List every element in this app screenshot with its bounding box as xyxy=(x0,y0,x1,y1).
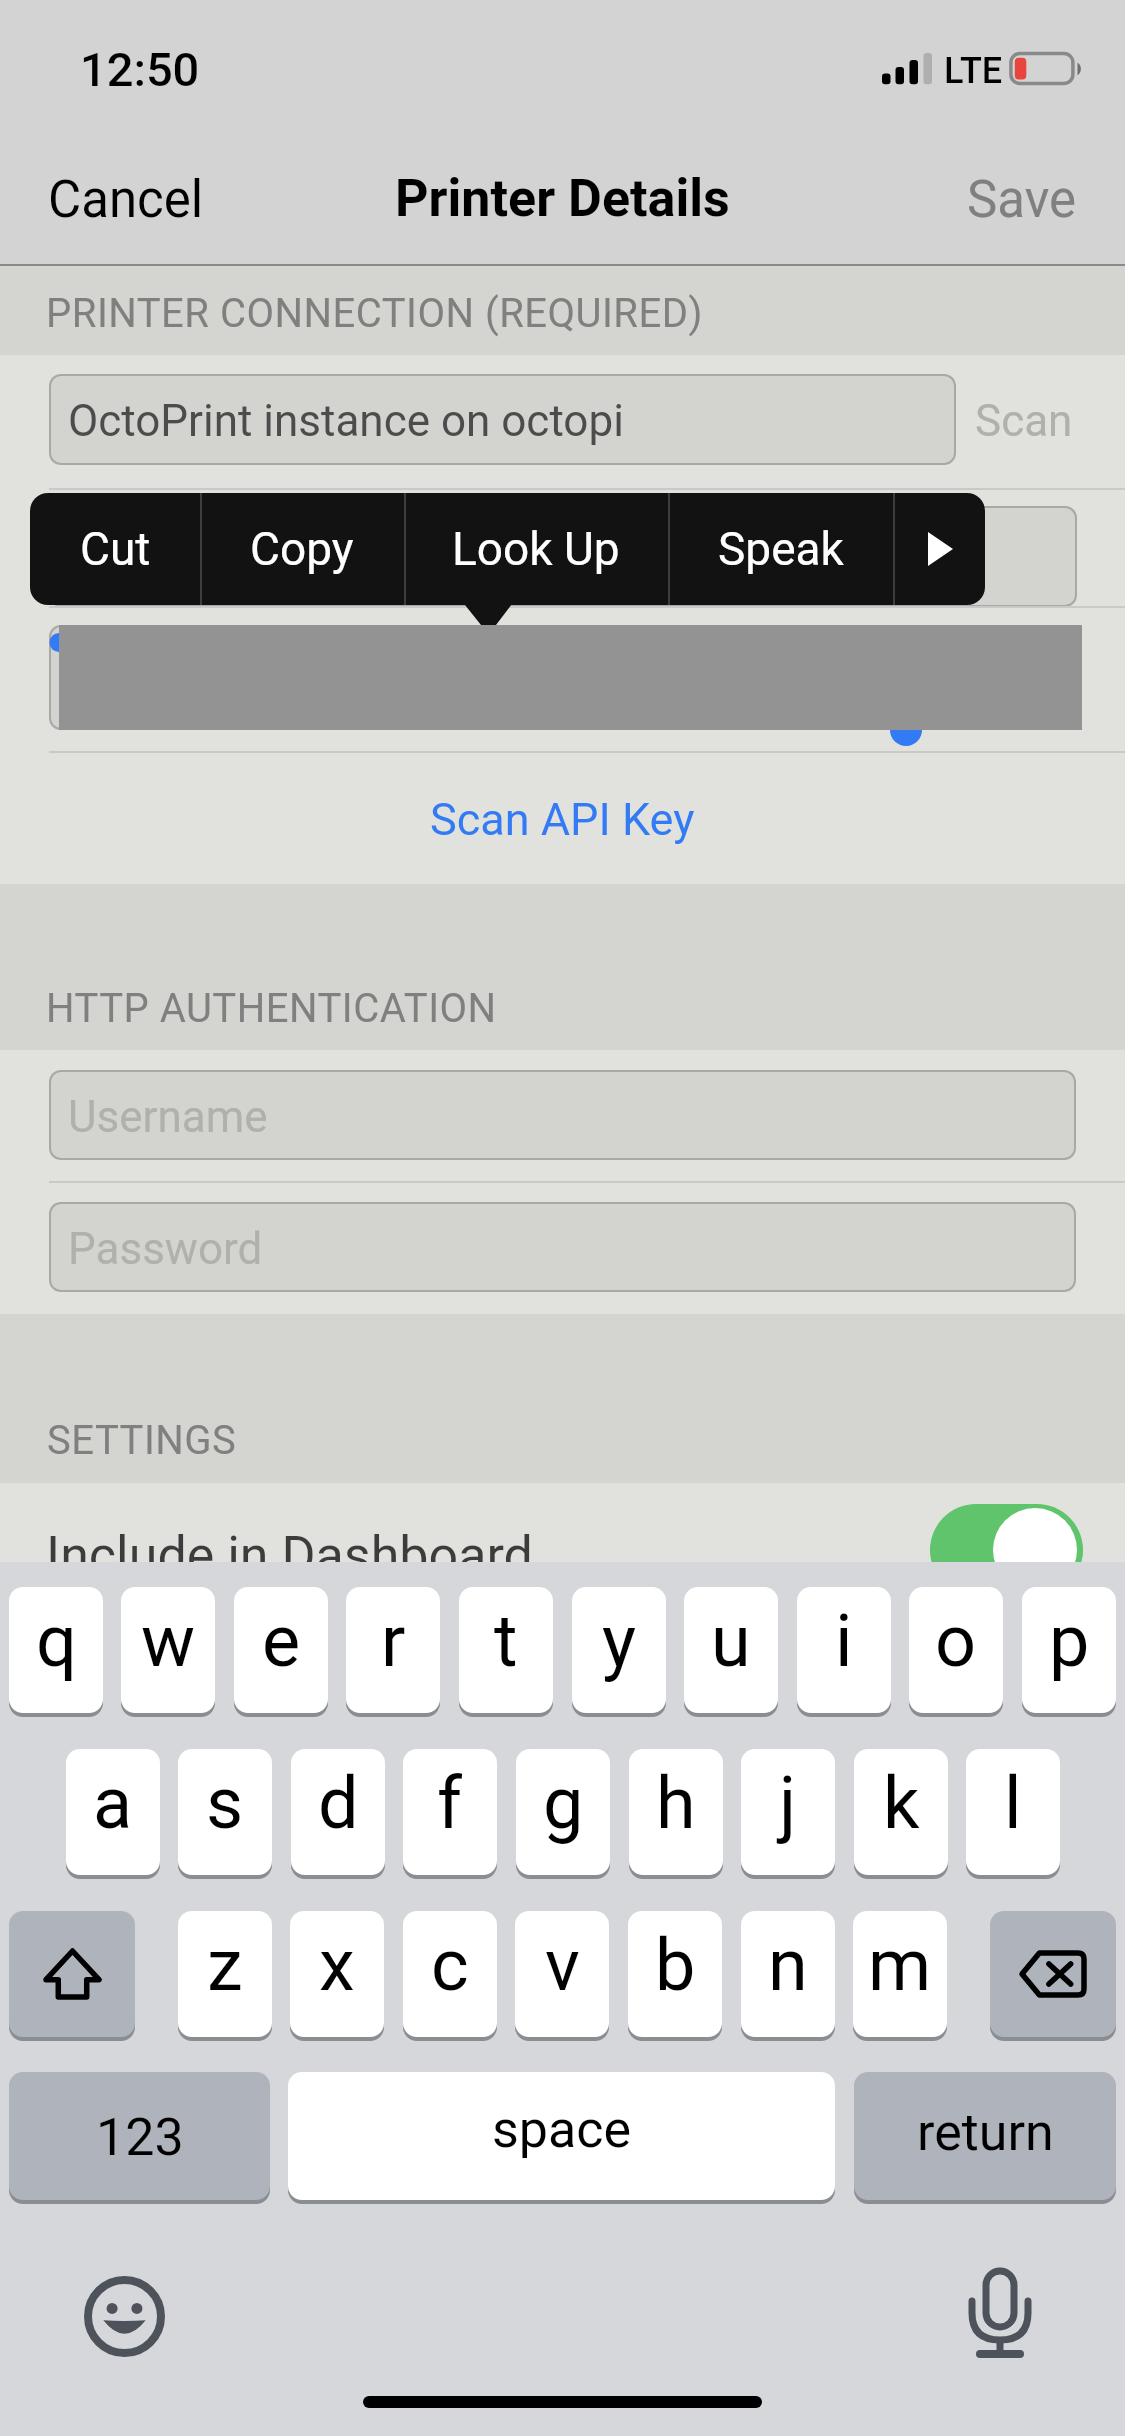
button[interactable]: f xyxy=(403,1749,497,1875)
staticText: Copy xyxy=(250,522,354,576)
button[interactable]: n xyxy=(741,1911,835,2037)
staticText: PRINTER CONNECTION (REQUIRED) xyxy=(46,290,703,337)
staticText: Printer Details xyxy=(395,168,730,229)
staticText: i xyxy=(835,1599,853,1683)
button[interactable]: t xyxy=(459,1587,553,1713)
staticText: g xyxy=(543,1761,584,1845)
staticText: s xyxy=(206,1761,244,1845)
button[interactable]: o xyxy=(909,1587,1003,1713)
staticText: r xyxy=(381,1599,406,1683)
staticText: 12:50 xyxy=(80,42,200,97)
staticText: space xyxy=(492,2099,632,2160)
staticText: p xyxy=(1049,1599,1090,1683)
button[interactable]: Include in Dashboard xyxy=(930,1504,1083,1596)
staticText: l xyxy=(1004,1761,1022,1845)
button[interactable]: y xyxy=(572,1587,666,1713)
staticText: x xyxy=(319,1923,355,2007)
staticText: Scan xyxy=(975,395,1073,447)
staticText: return xyxy=(917,2102,1054,2163)
button[interactable]: a xyxy=(66,1749,160,1875)
button[interactable] xyxy=(0,751,1125,884)
button[interactable]: g xyxy=(516,1749,610,1875)
button[interactable]: z xyxy=(178,1911,272,2037)
staticText: o xyxy=(935,1599,977,1683)
button[interactable]: h xyxy=(629,1749,723,1875)
button[interactable]: j xyxy=(741,1749,835,1875)
staticText: 123 xyxy=(96,2107,184,2168)
staticText: e xyxy=(262,1599,301,1683)
button[interactable]: More options xyxy=(893,493,985,605)
staticText: z xyxy=(207,1923,243,2007)
staticText: HTTP AUTHENTICATION xyxy=(46,985,497,1032)
staticText: Include in Dashboard xyxy=(46,1525,533,1586)
staticText: Username xyxy=(68,1091,268,1143)
button[interactable]: w xyxy=(121,1587,215,1713)
staticText: y xyxy=(602,1599,637,1683)
button[interactable]: x xyxy=(290,1911,384,2037)
staticText: Cancel xyxy=(48,170,204,230)
staticText: Cut xyxy=(80,522,151,576)
button[interactable]: b xyxy=(628,1911,722,2037)
staticText: w xyxy=(141,1599,196,1683)
button[interactable]: c xyxy=(403,1911,497,2037)
button[interactable]: Save xyxy=(945,150,1105,242)
staticText: c xyxy=(431,1923,469,2007)
button[interactable]: u xyxy=(684,1587,778,1713)
button[interactable]: r xyxy=(346,1587,440,1713)
button[interactable]: Copy xyxy=(200,493,404,605)
staticText: SETTINGS xyxy=(47,1417,237,1464)
button[interactable]: q xyxy=(9,1587,103,1713)
staticText: Speak xyxy=(718,522,844,576)
button[interactable]: l xyxy=(966,1749,1060,1875)
button[interactable]: space xyxy=(288,2072,835,2200)
button[interactable]: Shift xyxy=(9,1911,135,2037)
staticText: m xyxy=(868,1923,932,2007)
button[interactable] xyxy=(49,506,1077,607)
button[interactable]: v xyxy=(515,1911,609,2037)
staticText: u xyxy=(711,1599,751,1683)
button[interactable]: Cancel xyxy=(20,150,220,242)
staticText: b xyxy=(655,1923,696,2007)
staticText: OctoPrint instance on octopi xyxy=(68,395,624,447)
staticText: Password xyxy=(68,1223,263,1275)
staticText: h xyxy=(656,1761,696,1845)
button[interactable] xyxy=(49,625,1082,730)
staticText: n xyxy=(768,1923,808,2007)
button[interactable] xyxy=(49,1202,1076,1292)
button[interactable]: m xyxy=(853,1911,947,2037)
button[interactable]: Cut xyxy=(30,493,200,605)
button[interactable] xyxy=(49,374,956,465)
staticText: q xyxy=(36,1599,77,1683)
staticText: j xyxy=(779,1761,797,1845)
button[interactable]: e xyxy=(234,1587,328,1713)
button[interactable]: i xyxy=(797,1587,891,1713)
staticText: LTE xyxy=(944,50,1003,92)
staticText: Scan API Key xyxy=(430,793,695,846)
button[interactable]: Look Up xyxy=(404,493,668,605)
button[interactable]: return xyxy=(854,2072,1116,2200)
button[interactable] xyxy=(49,1070,1076,1160)
button[interactable]: 123 xyxy=(9,2072,270,2200)
button[interactable]: p xyxy=(1022,1587,1116,1713)
staticText: a xyxy=(93,1761,133,1845)
staticText: Save xyxy=(967,170,1077,230)
staticText: Look Up xyxy=(452,522,620,576)
staticText: v xyxy=(545,1923,580,2007)
button[interactable]: k xyxy=(854,1749,948,1875)
button[interactable]: Speak xyxy=(668,493,893,605)
button[interactable]: s xyxy=(178,1749,272,1875)
staticText: d xyxy=(318,1761,359,1845)
staticText: k xyxy=(883,1761,920,1845)
button[interactable]: Delete xyxy=(990,1911,1116,2037)
button[interactable]: Dictation xyxy=(962,2268,1038,2358)
button[interactable]: Emoji xyxy=(84,2276,165,2357)
button[interactable]: d xyxy=(291,1749,385,1875)
staticText: t xyxy=(494,1599,518,1683)
staticText: f xyxy=(437,1761,463,1845)
button[interactable]: Scan xyxy=(956,374,1086,465)
